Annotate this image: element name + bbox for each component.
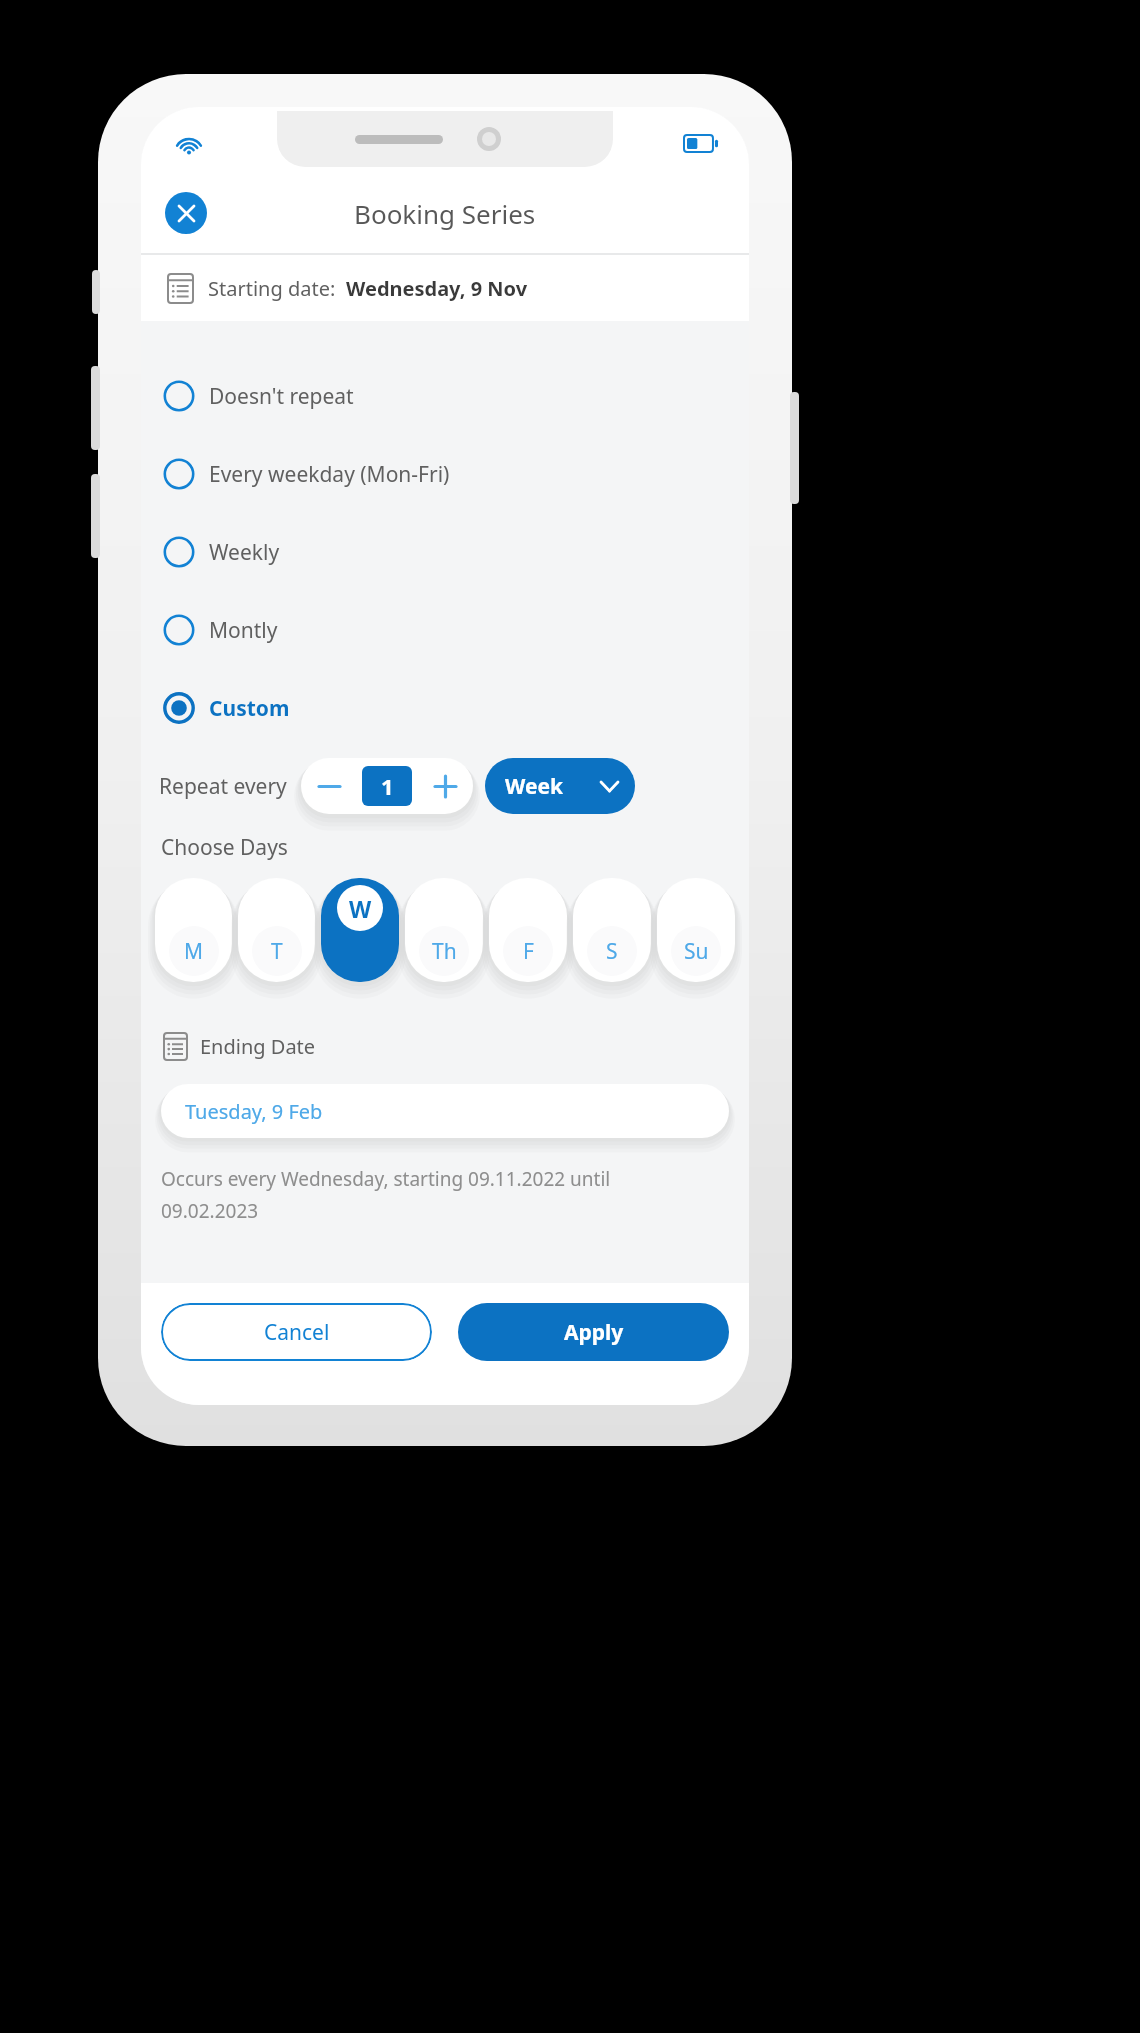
staticText: Su <box>684 937 709 966</box>
staticText: Doesn't repeat <box>209 382 354 411</box>
button[interactable]: Weekly <box>141 513 749 591</box>
button[interactable]: S <box>573 878 651 982</box>
staticText: 09.02.2023 <box>161 1198 259 1224</box>
button[interactable]: Cancel <box>161 1303 432 1361</box>
button[interactable]: F <box>489 878 567 982</box>
staticText: Starting date: <box>208 275 336 302</box>
button[interactable]: T <box>238 878 315 982</box>
button[interactable]: Tuesday, 9 Feb <box>161 1084 729 1138</box>
button[interactable]: Apply <box>458 1303 729 1361</box>
button[interactable]: Week <box>485 758 635 814</box>
button[interactable]: Every weekday (Mon-Fri) <box>141 435 749 513</box>
staticText: Every weekday (Mon-Fri) <box>209 460 450 489</box>
staticText: Cancel <box>264 1318 330 1347</box>
staticText: Custom <box>209 694 290 723</box>
button[interactable]: Doesn't repeat <box>141 357 749 435</box>
button[interactable]: Decrease <box>306 763 352 809</box>
staticText: W <box>349 893 372 924</box>
staticText: Occurs every Wednesday, starting 09.11.2… <box>161 1166 611 1192</box>
staticText: Th <box>432 937 457 966</box>
staticText: T <box>271 937 283 966</box>
staticText: Choose Days <box>161 833 288 862</box>
button[interactable]: Starting date: <box>141 255 749 321</box>
button[interactable]: Su <box>657 878 735 982</box>
staticText: Apply <box>564 1318 624 1347</box>
button[interactable]: Custom <box>141 669 749 747</box>
staticText: Booking Series <box>354 196 536 231</box>
staticText: 1 <box>381 771 394 801</box>
staticText: Ending Date <box>200 1033 316 1060</box>
staticText: M <box>184 937 204 966</box>
staticText: Week <box>505 772 563 801</box>
button[interactable]: Close <box>165 192 207 234</box>
staticText: Repeat every <box>159 772 287 801</box>
staticText: F <box>523 937 534 966</box>
staticText: Montly <box>209 616 278 645</box>
staticText: S <box>606 937 618 966</box>
button[interactable]: M <box>155 878 232 982</box>
button[interactable]: Montly <box>141 591 749 669</box>
button[interactable]: W <box>321 878 399 982</box>
staticText: Tuesday, 9 Feb <box>185 1098 323 1125</box>
staticText: Weekly <box>209 538 280 567</box>
staticText: Wednesday, 9 Nov <box>346 275 528 302</box>
button[interactable]: Increase <box>422 763 468 809</box>
button[interactable]: Th <box>405 878 483 982</box>
